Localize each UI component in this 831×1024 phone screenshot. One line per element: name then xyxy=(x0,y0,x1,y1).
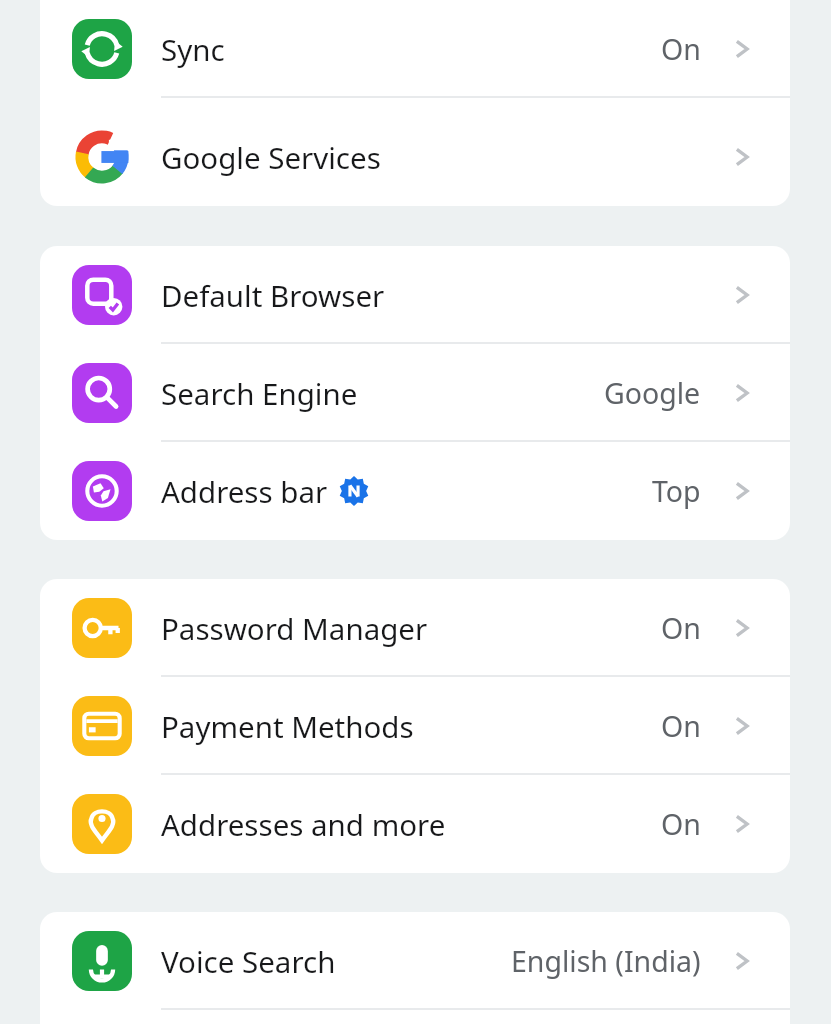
button[interactable]: Default Browser xyxy=(40,246,790,344)
button[interactable]: Address bar xyxy=(40,442,790,540)
staticText: Voice Search xyxy=(161,941,336,981)
staticText: On xyxy=(661,707,701,746)
button[interactable]: Google Services xyxy=(40,108,790,206)
button[interactable]: Sync xyxy=(40,0,790,98)
staticText: Google xyxy=(604,374,701,413)
staticText: English (India) xyxy=(511,942,701,981)
staticText: On xyxy=(661,609,701,648)
staticText: Payment Methods xyxy=(161,706,414,746)
staticText: Addresses and more xyxy=(161,804,446,844)
button[interactable]: Password Manager xyxy=(40,579,790,677)
staticText: Default Browser xyxy=(161,275,385,315)
button[interactable]: Search Engine xyxy=(40,344,790,442)
staticText: Top xyxy=(652,472,701,511)
button[interactable]: Payment Methods xyxy=(40,677,790,775)
staticText: Sync xyxy=(161,29,225,69)
button[interactable]: Voice Search xyxy=(40,912,790,1010)
staticText: Google Services xyxy=(161,137,381,177)
staticText: Search Engine xyxy=(161,373,358,413)
staticText: Password Manager xyxy=(161,608,428,648)
staticText: On xyxy=(661,805,701,844)
button[interactable]: Addresses and more xyxy=(40,775,790,873)
staticText: Address bar xyxy=(161,471,328,511)
staticText: On xyxy=(661,30,701,69)
